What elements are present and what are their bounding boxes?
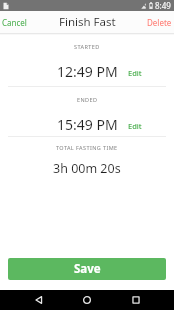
button[interactable]: Home <box>77 290 97 310</box>
staticText: 8:49 <box>155 0 171 11</box>
staticText: Delete <box>147 17 172 28</box>
staticText: Save <box>74 261 101 277</box>
button[interactable]: Back <box>29 290 49 310</box>
staticText: 15:49 PM <box>57 115 118 134</box>
button[interactable]: Delete <box>145 13 174 32</box>
button[interactable]: Cancel <box>0 13 29 32</box>
button[interactable]: Edit <box>124 119 146 133</box>
staticText: STARTED <box>74 43 100 50</box>
staticText: Finish Fast <box>59 14 116 30</box>
button[interactable]: Edit <box>124 66 146 80</box>
staticText: TOTAL FASTING TIME <box>56 144 118 151</box>
staticText: 12:49 PM <box>57 62 118 81</box>
staticText: ENDED <box>77 96 98 103</box>
button[interactable]: Save <box>8 258 166 280</box>
button[interactable]: Recents <box>126 290 146 310</box>
staticText: Edit <box>128 68 142 78</box>
staticText: 3h 00m 20s <box>53 160 121 177</box>
staticText: Cancel <box>2 17 27 28</box>
staticText: Edit <box>128 121 142 131</box>
